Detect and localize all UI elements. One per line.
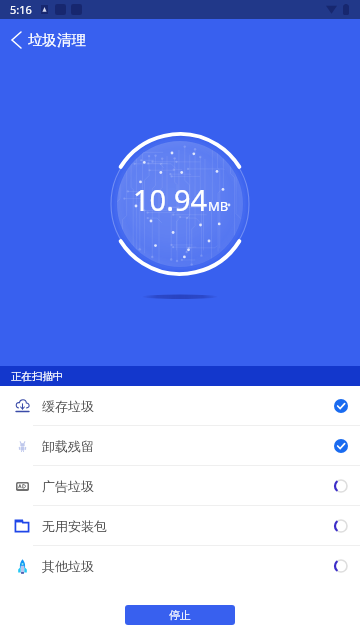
staticText: 广告垃圾 <box>42 478 94 494</box>
button[interactable]: Back <box>0 24 32 56</box>
staticText: MB <box>208 197 229 215</box>
button[interactable]: 其他垃圾 <box>0 546 360 585</box>
button[interactable]: 停止 <box>125 605 235 625</box>
staticText: 5:16 <box>10 2 32 17</box>
button[interactable]: 无用安装包 <box>0 506 360 545</box>
staticText: 停止 <box>169 608 191 622</box>
button[interactable]: 缓存垃圾 <box>0 386 360 425</box>
staticText: 无用安装包 <box>42 518 107 534</box>
staticText: 垃圾清理 <box>28 31 86 49</box>
staticText: 其他垃圾 <box>42 558 94 574</box>
button[interactable]: 卸载残留 <box>0 426 360 465</box>
button[interactable]: 广告垃圾 <box>0 466 360 505</box>
staticText: 10.94 <box>133 180 208 219</box>
staticText: 正在扫描中 <box>11 370 64 383</box>
staticText: 卸载残留 <box>42 438 94 454</box>
staticText: 缓存垃圾 <box>42 398 94 414</box>
